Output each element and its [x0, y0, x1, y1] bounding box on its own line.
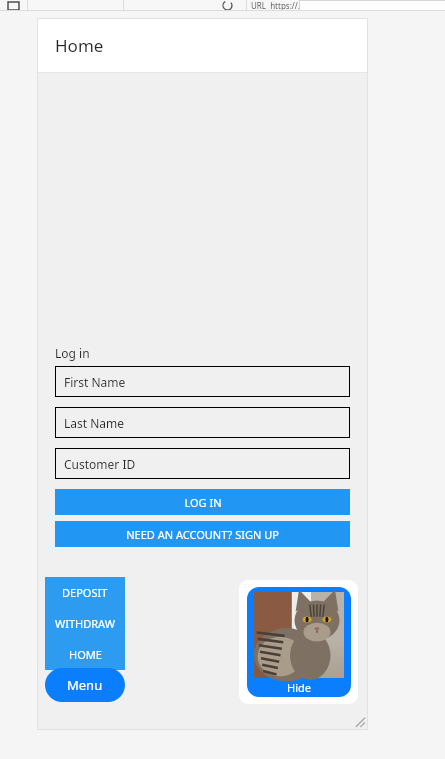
button[interactable]: NEED AN ACCOUNT? SIGN UP [55, 521, 350, 547]
staticText: DEPOSIT [62, 585, 108, 600]
staticText: Hide [287, 680, 311, 695]
button[interactable]: Hide [247, 587, 351, 697]
button[interactable]: Customer ID [55, 448, 350, 479]
button[interactable]: HOME [45, 639, 125, 670]
staticText: Log in [55, 345, 90, 361]
button[interactable]: Last Name [55, 407, 350, 438]
button[interactable]: Menu [45, 668, 125, 702]
staticText: Home [55, 34, 104, 57]
staticText: NEED AN ACCOUNT? SIGN UP [126, 527, 279, 542]
button[interactable]: WITHDRAW [45, 608, 125, 639]
staticText: Customer ID [64, 456, 136, 472]
staticText: WITHDRAW [55, 616, 115, 631]
staticText: Menu [67, 676, 103, 694]
staticText: First Name [64, 374, 126, 390]
staticText: Last Name [64, 415, 125, 431]
button[interactable]: LOG IN [55, 489, 350, 515]
staticText: LOG IN [184, 495, 222, 510]
button[interactable]: DEPOSIT [45, 577, 125, 608]
staticText: HOME [69, 647, 102, 662]
button[interactable]: First Name [55, 366, 350, 397]
staticText: URL https://... [251, 0, 305, 11]
